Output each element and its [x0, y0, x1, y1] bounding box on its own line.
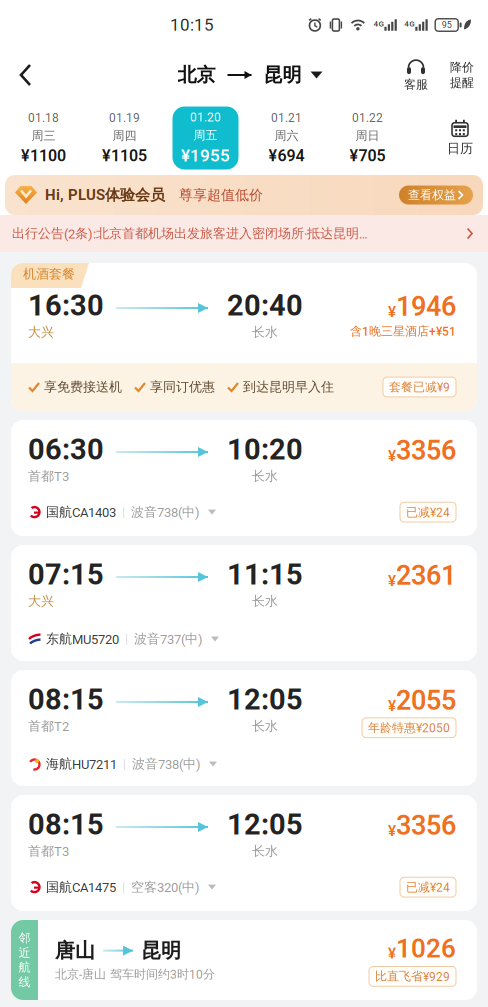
staticText: 近	[18, 945, 30, 960]
staticText: 08:15	[28, 683, 104, 716]
staticText: 11:15	[227, 558, 303, 591]
staticText: 07:15	[28, 558, 104, 591]
staticText: 查看权益	[408, 188, 456, 202]
staticText: 国航CA1475	[46, 879, 116, 895]
staticText: 客服	[404, 77, 428, 92]
staticText: 首都T3	[28, 468, 69, 484]
staticText: 长水	[252, 843, 278, 859]
staticText: |	[123, 757, 126, 771]
staticText: |	[125, 632, 128, 646]
staticText: 01.22	[352, 111, 383, 125]
staticText: 日历	[447, 140, 473, 156]
staticText: ¥1955	[181, 146, 230, 165]
button[interactable]: 01.19	[84, 111, 165, 165]
staticText: 20:40	[227, 289, 303, 322]
button[interactable]: 降价提醒	[428, 60, 488, 90]
staticText: 昆明	[141, 938, 181, 963]
button[interactable]: 01.20	[165, 106, 246, 169]
staticText: 线	[18, 975, 30, 989]
staticText: ¥	[388, 822, 396, 839]
button[interactable]: 08:15	[11, 670, 477, 786]
staticText: 08:15	[28, 808, 104, 841]
staticText: 套餐已减¥9	[389, 380, 450, 394]
staticText: |	[122, 880, 125, 894]
button[interactable]: 01.18	[3, 111, 84, 165]
staticText: 机酒套餐	[23, 266, 75, 282]
staticText: 昆明	[263, 63, 301, 87]
staticText: 尊享超值低价	[179, 186, 263, 204]
staticText: 3356	[396, 810, 456, 841]
staticText: 01.20	[190, 111, 221, 124]
button[interactable]: Hi, PLUS体验会员	[0, 175, 488, 215]
staticText: 周五	[193, 128, 217, 142]
staticText: 首都T3	[28, 843, 69, 859]
staticText: 空客320(中)	[131, 879, 200, 895]
button[interactable]: 返回	[0, 56, 40, 94]
staticText: ¥694	[268, 147, 304, 165]
staticText: 比直飞省¥929	[375, 969, 450, 984]
staticText: 已减¥24	[406, 880, 450, 894]
button[interactable]: 机酒套餐	[11, 263, 477, 411]
staticText: 北京	[177, 63, 215, 87]
staticText: 10:20	[227, 433, 303, 466]
staticText: 邻	[18, 930, 30, 945]
staticText: ¥	[388, 447, 396, 464]
staticText: 3356	[396, 435, 456, 466]
staticText: 12:05	[227, 683, 303, 716]
staticText: 出行公告(2条):北京首都机场出发旅客进入密闭场所·抵达昆明…	[12, 225, 368, 241]
button[interactable]: 出行公告(2条):北京首都机场出发旅客进入密闭场所·抵达昆明…	[0, 215, 488, 252]
staticText: 周日	[355, 128, 379, 143]
staticText: ¥	[388, 303, 396, 320]
staticText: 2055	[396, 685, 456, 716]
staticText: 周六	[274, 128, 298, 143]
staticText: 01.21	[271, 111, 302, 125]
staticText: 享同订优惠	[150, 379, 215, 395]
staticText: 波音738(中)	[132, 756, 201, 772]
staticText: 唐山	[55, 938, 95, 963]
staticText: 2361	[396, 560, 456, 591]
staticText: ¥1105	[102, 147, 147, 165]
staticText: 大兴	[28, 324, 54, 340]
button[interactable]: 07:15	[11, 545, 477, 661]
staticText: 国航CA1403	[46, 504, 116, 520]
staticText: 北京-唐山 驾车时间约3时10分	[55, 967, 215, 982]
staticText: 1026	[396, 934, 456, 963]
staticText: |	[122, 505, 125, 519]
staticText: 海航HU7211	[46, 756, 117, 772]
staticText: 95	[442, 20, 452, 30]
staticText: 波音737(中)	[134, 631, 203, 647]
button[interactable]: 08:15	[11, 795, 477, 911]
staticText: 年龄特惠¥2050	[368, 720, 450, 735]
button[interactable]: 06:30	[11, 420, 477, 536]
staticText: 东航MU5720	[46, 631, 119, 647]
staticText: ¥	[388, 697, 396, 714]
button[interactable]: 客服	[404, 58, 428, 92]
staticText: ¥705	[349, 147, 385, 165]
button[interactable]: 01.21	[246, 111, 327, 165]
staticText: 4G	[373, 19, 383, 28]
button[interactable]: 01.22	[327, 111, 408, 165]
staticText: 4G	[404, 19, 414, 28]
staticText: 提醒	[450, 75, 474, 90]
staticText: Hi, PLUS体验会员	[45, 186, 165, 204]
staticText: 享免费接送机	[44, 379, 122, 395]
button[interactable]: 日历	[432, 119, 488, 156]
staticText: 波音738(中)	[131, 504, 200, 520]
staticText: 首都T2	[28, 718, 69, 734]
staticText: 已减¥24	[406, 505, 450, 519]
staticText: 长水	[252, 593, 278, 609]
staticText: 1946	[396, 291, 456, 322]
staticText: 01.19	[109, 111, 140, 125]
staticText: 到达昆明早入住	[243, 379, 334, 395]
staticText: 周三	[31, 128, 55, 143]
staticText: 含1晚三星酒店+¥51	[350, 324, 456, 338]
staticText: ¥1100	[21, 147, 66, 165]
button[interactable]: 邻	[11, 920, 477, 1000]
staticText: 降价	[450, 60, 474, 74]
staticText: ¥	[388, 945, 396, 962]
staticText: 12:05	[227, 808, 303, 841]
staticText: 周四	[112, 128, 136, 143]
staticText: 16:30	[28, 289, 104, 322]
staticText: 06:30	[28, 433, 104, 466]
button[interactable]: 选择城市	[165, 63, 322, 87]
